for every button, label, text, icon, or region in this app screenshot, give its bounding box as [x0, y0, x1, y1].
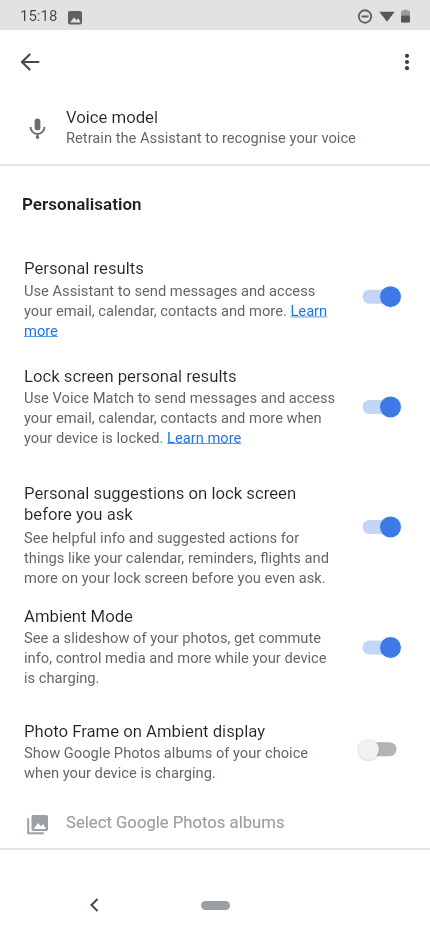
- staticText: Photo Frame on Ambient display: [24, 722, 266, 742]
- staticText: See helpful info and suggested actions f…: [24, 529, 329, 586]
- button[interactable]: [69, 881, 117, 929]
- button[interactable]: Personal suggestions on lock screen befo…: [0, 468, 430, 600]
- button[interactable]: Lock screen personal results: [0, 352, 430, 468]
- staticText: Use Assistant to send messages and acces…: [24, 282, 328, 339]
- staticText: Use Voice Match to send messages and acc…: [24, 389, 336, 446]
- staticText: Ambient Mode: [24, 607, 133, 627]
- button[interactable]: Ambient Mode: [0, 600, 430, 710]
- staticText: See a slideshow of your photos, get comm…: [24, 629, 327, 686]
- button[interactable]: Photo Frame on Ambient display: [0, 710, 430, 805]
- staticText: 15:18: [20, 7, 58, 25]
- button[interactable]: [6, 38, 54, 86]
- button[interactable]: [387, 38, 427, 86]
- staticText: Select Google Photos albums: [66, 813, 285, 833]
- staticText: Personal results: [24, 259, 144, 279]
- staticText: Retrain the Assistant to recognise your …: [66, 129, 356, 146]
- staticText: Show Google Photos albums of your choice…: [24, 744, 309, 781]
- staticText: Personalisation: [22, 194, 142, 214]
- staticText: Voice model: [66, 108, 159, 128]
- button[interactable]: Personal results: [0, 242, 430, 352]
- staticText: Lock screen personal results: [24, 367, 237, 387]
- button[interactable]: Voice model: [0, 95, 430, 164]
- staticText: Personal suggestions on lock screen befo…: [24, 484, 297, 524]
- button[interactable]: Select Google Photos albums: [0, 805, 430, 849]
- button[interactable]: [201, 901, 230, 910]
